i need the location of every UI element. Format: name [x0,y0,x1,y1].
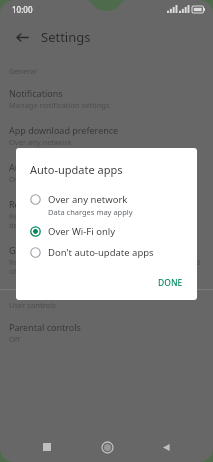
staticText: Remove apps no longer used on this devic… [9,211,138,230]
staticText: App download preference [9,124,119,136]
button[interactable]: Google Play preferences [0,237,213,283]
staticText: Off [9,334,21,344]
staticText: Don't auto-update apps [48,246,154,259]
staticText: Over Wi-Fi only [48,225,116,238]
staticText: Auto-update apps [30,162,123,177]
staticText: Notifications [9,87,63,99]
button[interactable]: Recents [34,434,60,460]
staticText: DONE [158,277,183,289]
staticText: Remove history in your wishlist, the Bet… [9,257,201,276]
button[interactable]: Notifications [0,80,213,117]
staticText: Over any network [9,137,72,147]
staticText: Manage notification settings [9,100,110,110]
staticText: User controls [9,300,56,310]
button[interactable]: Over any network [16,189,197,221]
staticText: Google Play preferences [9,244,112,256]
staticText: Parental controls [9,321,81,333]
button[interactable]: Over Wi-Fi only [16,221,197,242]
staticText: Auto-update apps [9,161,85,173]
staticText: Data charges may apply [48,207,133,217]
button[interactable]: DONE [152,274,189,292]
staticText: Over Wi-Fi only [9,174,62,184]
staticText: Over any network [48,193,128,206]
button[interactable]: Don't auto-update apps [16,242,197,263]
button[interactable]: Remove apps locally [0,191,213,237]
staticText: Remove apps locally [9,198,95,210]
button[interactable]: Back [153,434,179,460]
staticText: 10:00 [12,4,33,15]
button[interactable]: Home [94,434,120,460]
button[interactable]: App download preference [0,117,213,154]
button[interactable]: Parental controls [0,314,213,351]
button[interactable]: Auto-update apps [0,154,213,191]
staticText: General [9,66,37,76]
staticText: Settings [41,28,91,46]
button[interactable]: Back [8,23,36,51]
